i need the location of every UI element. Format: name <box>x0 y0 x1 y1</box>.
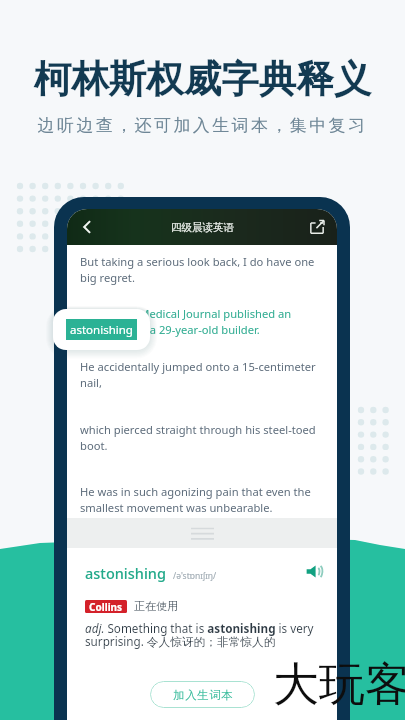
staticText: The British Medical Journal published an… <box>80 306 320 337</box>
button[interactable]: Share <box>303 213 331 241</box>
staticText: He accidentally jumped onto a 15-centime… <box>80 359 320 390</box>
button[interactable]: 加入生词本 <box>150 681 255 708</box>
staticText: /ə'stɒnɪʃɪŋ/ <box>173 570 217 582</box>
staticText: But taking a serious look back, I do hav… <box>80 254 320 285</box>
staticText: 大玩客 <box>273 656 405 714</box>
staticText: 边听边查，还可加入生词本，集中复习 <box>0 115 405 136</box>
staticText: adj. Something that is astonishing is ve… <box>85 620 321 649</box>
staticText: 柯林斯权威字典释义 <box>0 56 405 103</box>
staticText: He was in such agonizing pain that even … <box>80 484 320 515</box>
staticText: which pierced straight through his steel… <box>80 422 320 453</box>
staticText: 正在使用 <box>134 599 178 613</box>
staticText: astonishing <box>85 563 166 583</box>
staticText: Collins <box>89 600 123 613</box>
button[interactable]: astonishing <box>53 309 150 350</box>
button[interactable]: Back <box>72 212 102 242</box>
staticText: astonishing <box>70 322 133 338</box>
staticText: 四级晨读英语 <box>171 221 234 234</box>
staticText: 加入生词本 <box>173 688 233 702</box>
button[interactable]: Pronounce <box>301 557 327 583</box>
